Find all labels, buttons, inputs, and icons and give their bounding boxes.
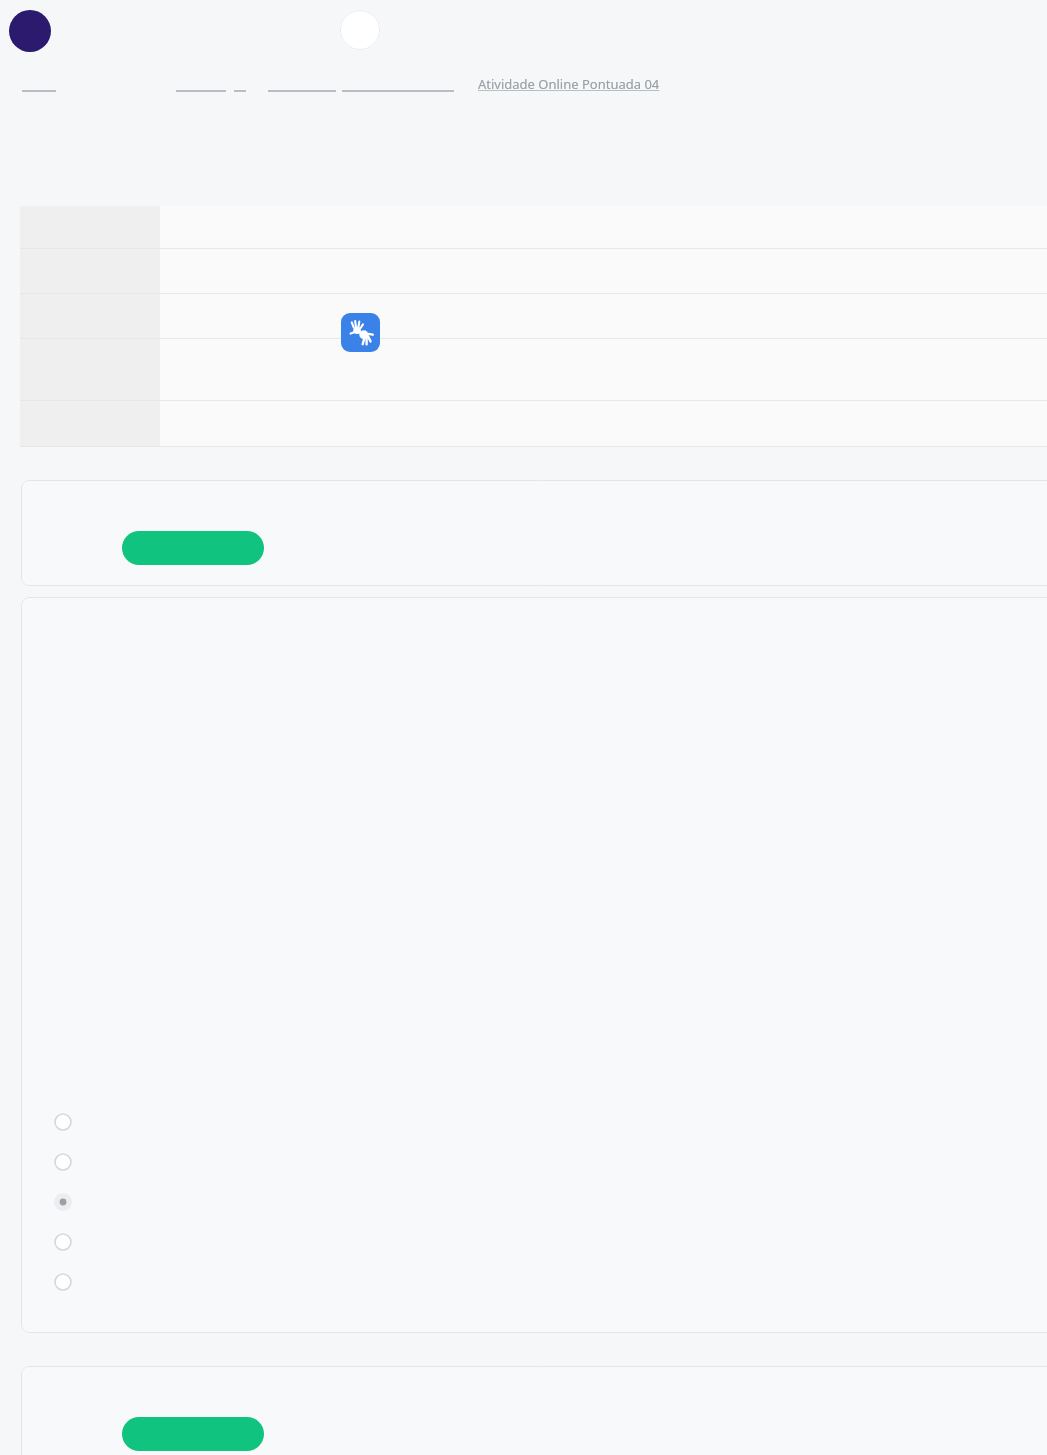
button[interactable]: Ação xyxy=(122,531,264,565)
button[interactable] xyxy=(40,1194,600,1230)
button[interactable]: Acessibilidade em Libras xyxy=(341,313,380,352)
button[interactable]: Ação xyxy=(122,1417,264,1451)
button[interactable]: Perfil xyxy=(9,10,51,52)
staticText: Atividade Online Pontuada 04 xyxy=(478,75,660,93)
button[interactable]: Logo xyxy=(340,10,380,50)
button[interactable]: Atividade Online Pontuada 04 xyxy=(478,75,660,93)
